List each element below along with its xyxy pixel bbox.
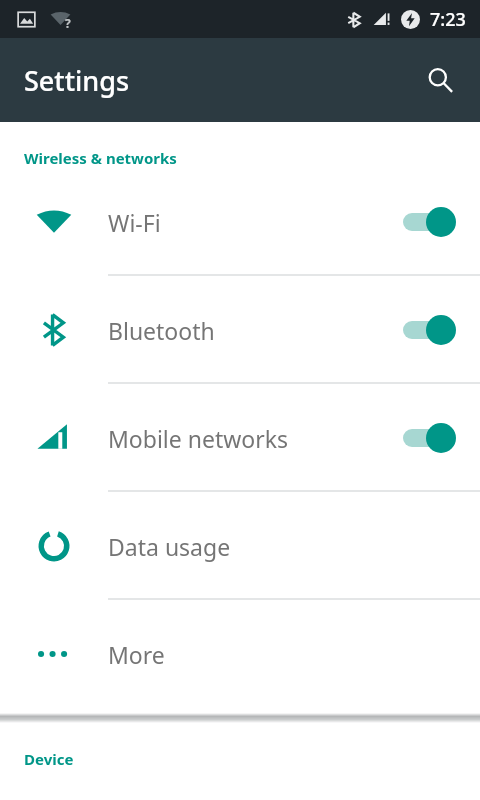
button[interactable]: More [0,600,480,708]
staticText: Mobile networks [108,423,400,454]
staticText: 7:23 [430,7,466,32]
button[interactable]: Bluetooth [0,276,480,384]
button[interactable]: Toggle Bluetooth [400,310,458,350]
button[interactable]: Toggle Wi-Fi [400,202,458,242]
button[interactable]: Mobile networks [0,384,480,492]
staticText: Wi-Fi [108,207,400,238]
button[interactable]: Toggle Mobile networks [400,418,458,458]
staticText: Wireless & networks [24,148,177,168]
staticText: ? [65,15,71,31]
staticText: Data usage [108,531,458,562]
staticText: Settings [24,62,130,99]
staticText: More [108,639,458,670]
staticText: Device [24,749,74,769]
button[interactable]: Data usage [0,492,480,600]
button[interactable]: Wi-Fi [0,168,480,276]
button[interactable]: Search [414,54,466,106]
staticText: Bluetooth [108,315,400,346]
